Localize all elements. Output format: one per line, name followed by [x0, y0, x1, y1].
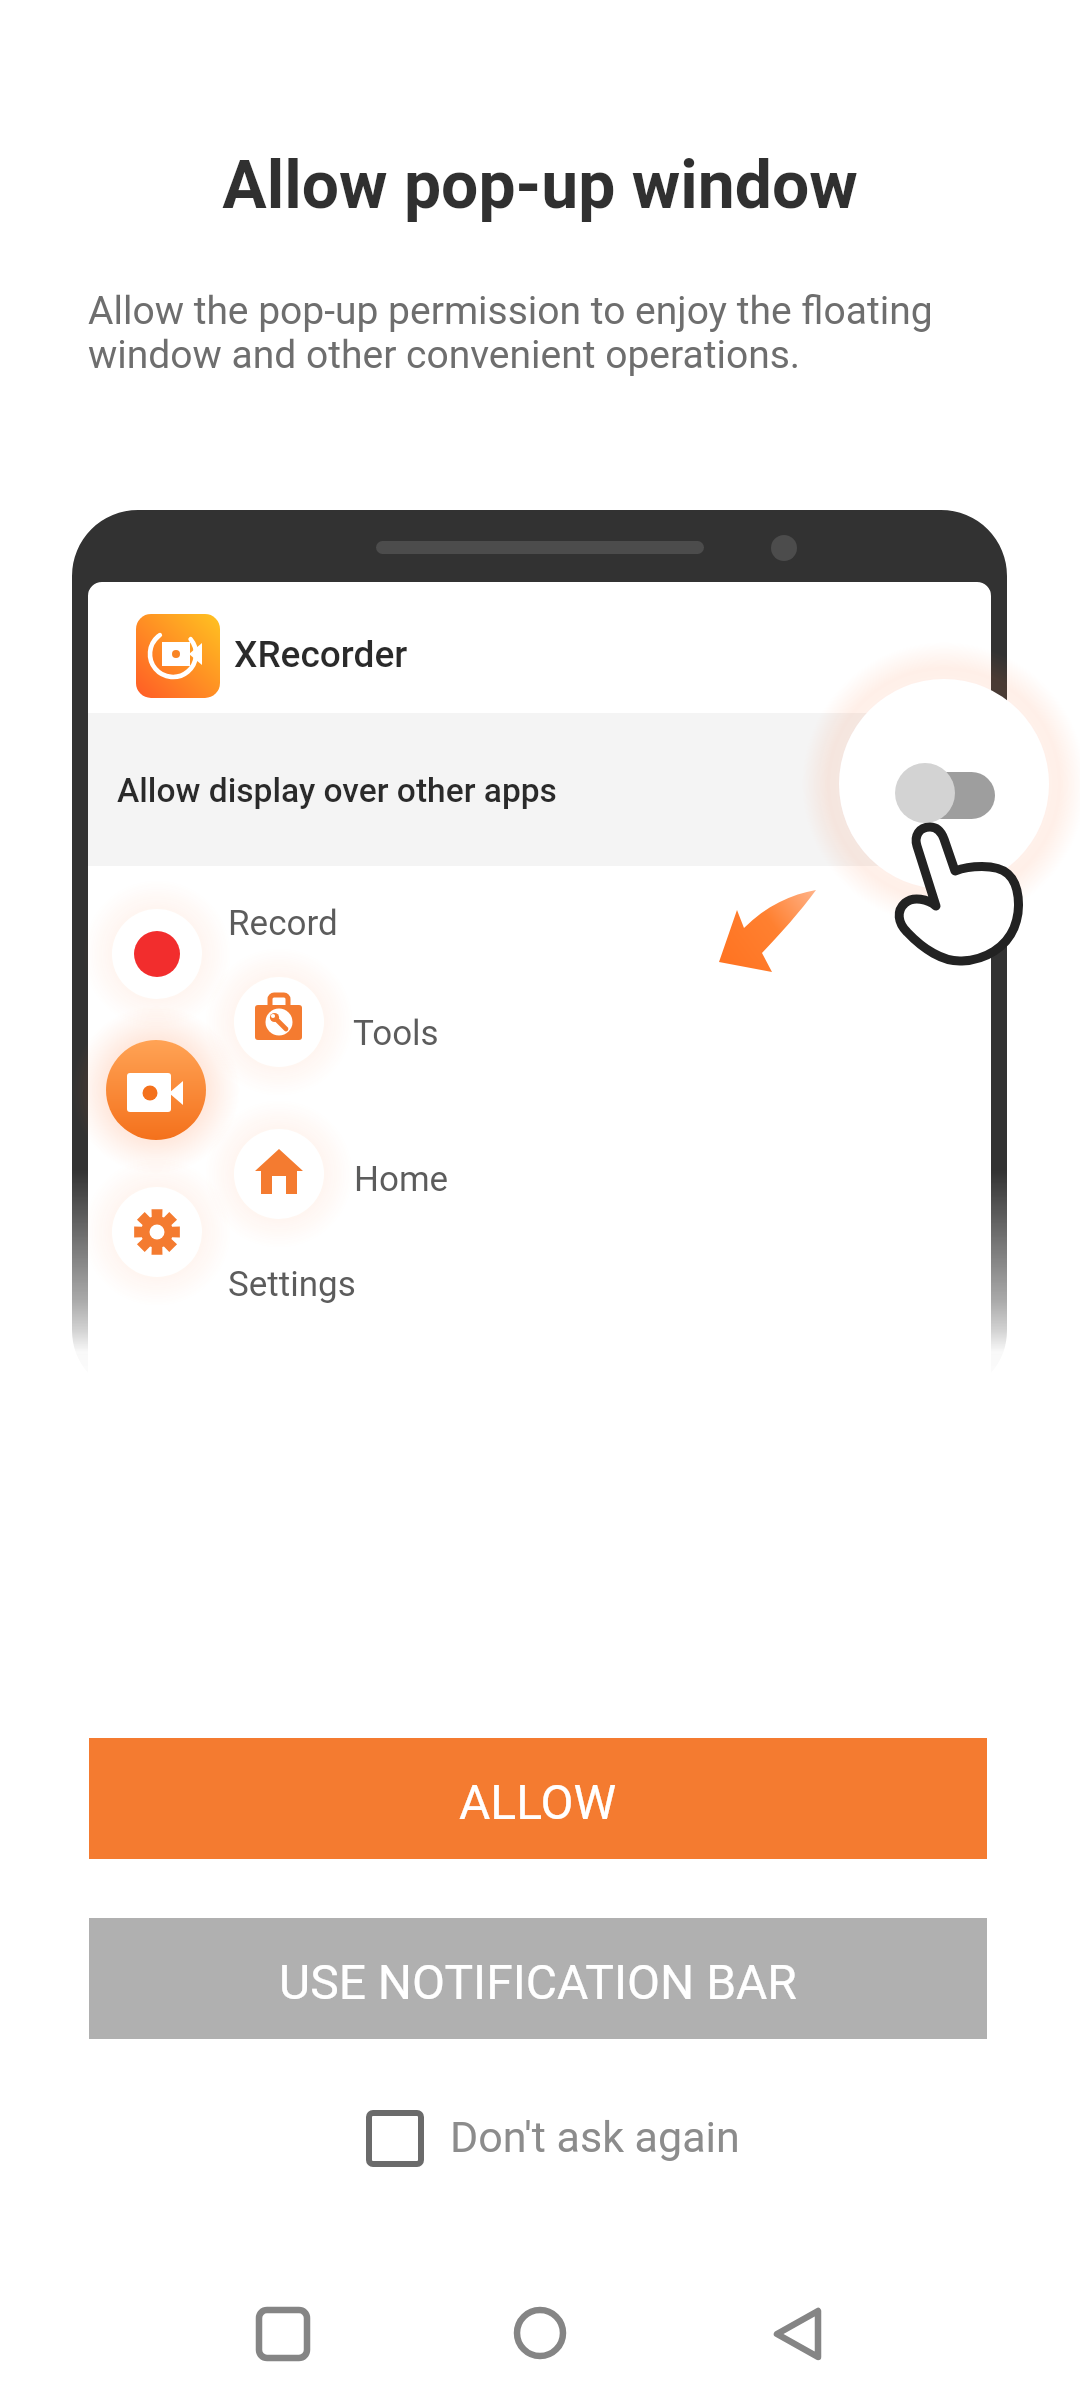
- staticText: Don't ask again: [450, 2112, 740, 2162]
- staticText: Allow pop-up window: [0, 147, 1080, 224]
- staticText: USE NOTIFICATION BAR: [279, 1954, 797, 2010]
- button[interactable]: Back: [748, 2283, 848, 2383]
- staticText: ALLOW: [459, 1774, 617, 1830]
- button[interactable]: Home: [490, 2283, 590, 2383]
- staticText: XRecorder: [234, 633, 408, 676]
- staticText: Allow the pop-up permission to enjoy the…: [88, 288, 933, 377]
- button[interactable]: ALLOW: [89, 1738, 987, 1859]
- staticText: Home: [354, 1159, 449, 1200]
- staticText: Record: [228, 903, 338, 944]
- staticText: Settings: [228, 1264, 356, 1305]
- button[interactable]: Recents: [233, 2283, 333, 2383]
- staticText: Tools: [353, 1013, 439, 1054]
- button[interactable]: USE NOTIFICATION BAR: [89, 1918, 987, 2039]
- button[interactable]: Don't ask again: [350, 2095, 750, 2185]
- staticText: Allow display over other apps: [117, 771, 557, 810]
